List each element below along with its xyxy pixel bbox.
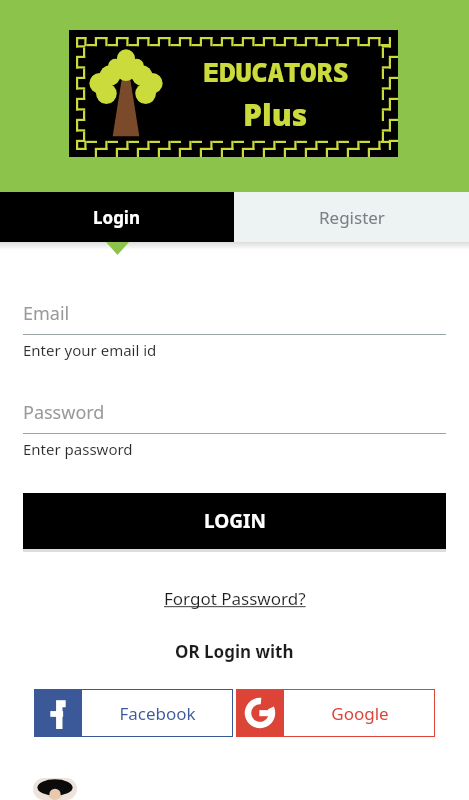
button[interactable]: LOGIN [23,493,446,549]
staticText: Enter password [23,439,133,459]
staticText: Facebook [119,702,196,725]
staticText: Password [23,400,105,425]
button[interactable]: Google [236,689,435,737]
button[interactable]: Login [0,192,234,242]
staticText: Plus [243,94,308,135]
staticText: Login [93,206,141,229]
staticText: Google [331,702,389,725]
staticText: Email [23,301,70,326]
staticText: Forgot Password? [164,587,306,610]
staticText: Register [319,206,385,229]
staticText: Enter your email id [23,340,157,360]
button[interactable]: Forgot Password? [164,587,306,610]
button[interactable]: Profile photo [33,778,77,800]
staticText: EDUCATORS [203,53,349,90]
staticText: OR Login with [175,640,294,663]
button[interactable]: Register [234,192,469,242]
button[interactable]: Facebook [34,689,233,737]
button[interactable]: Email [23,301,446,360]
staticText: LOGIN [204,508,266,534]
button[interactable]: Password [23,400,446,459]
